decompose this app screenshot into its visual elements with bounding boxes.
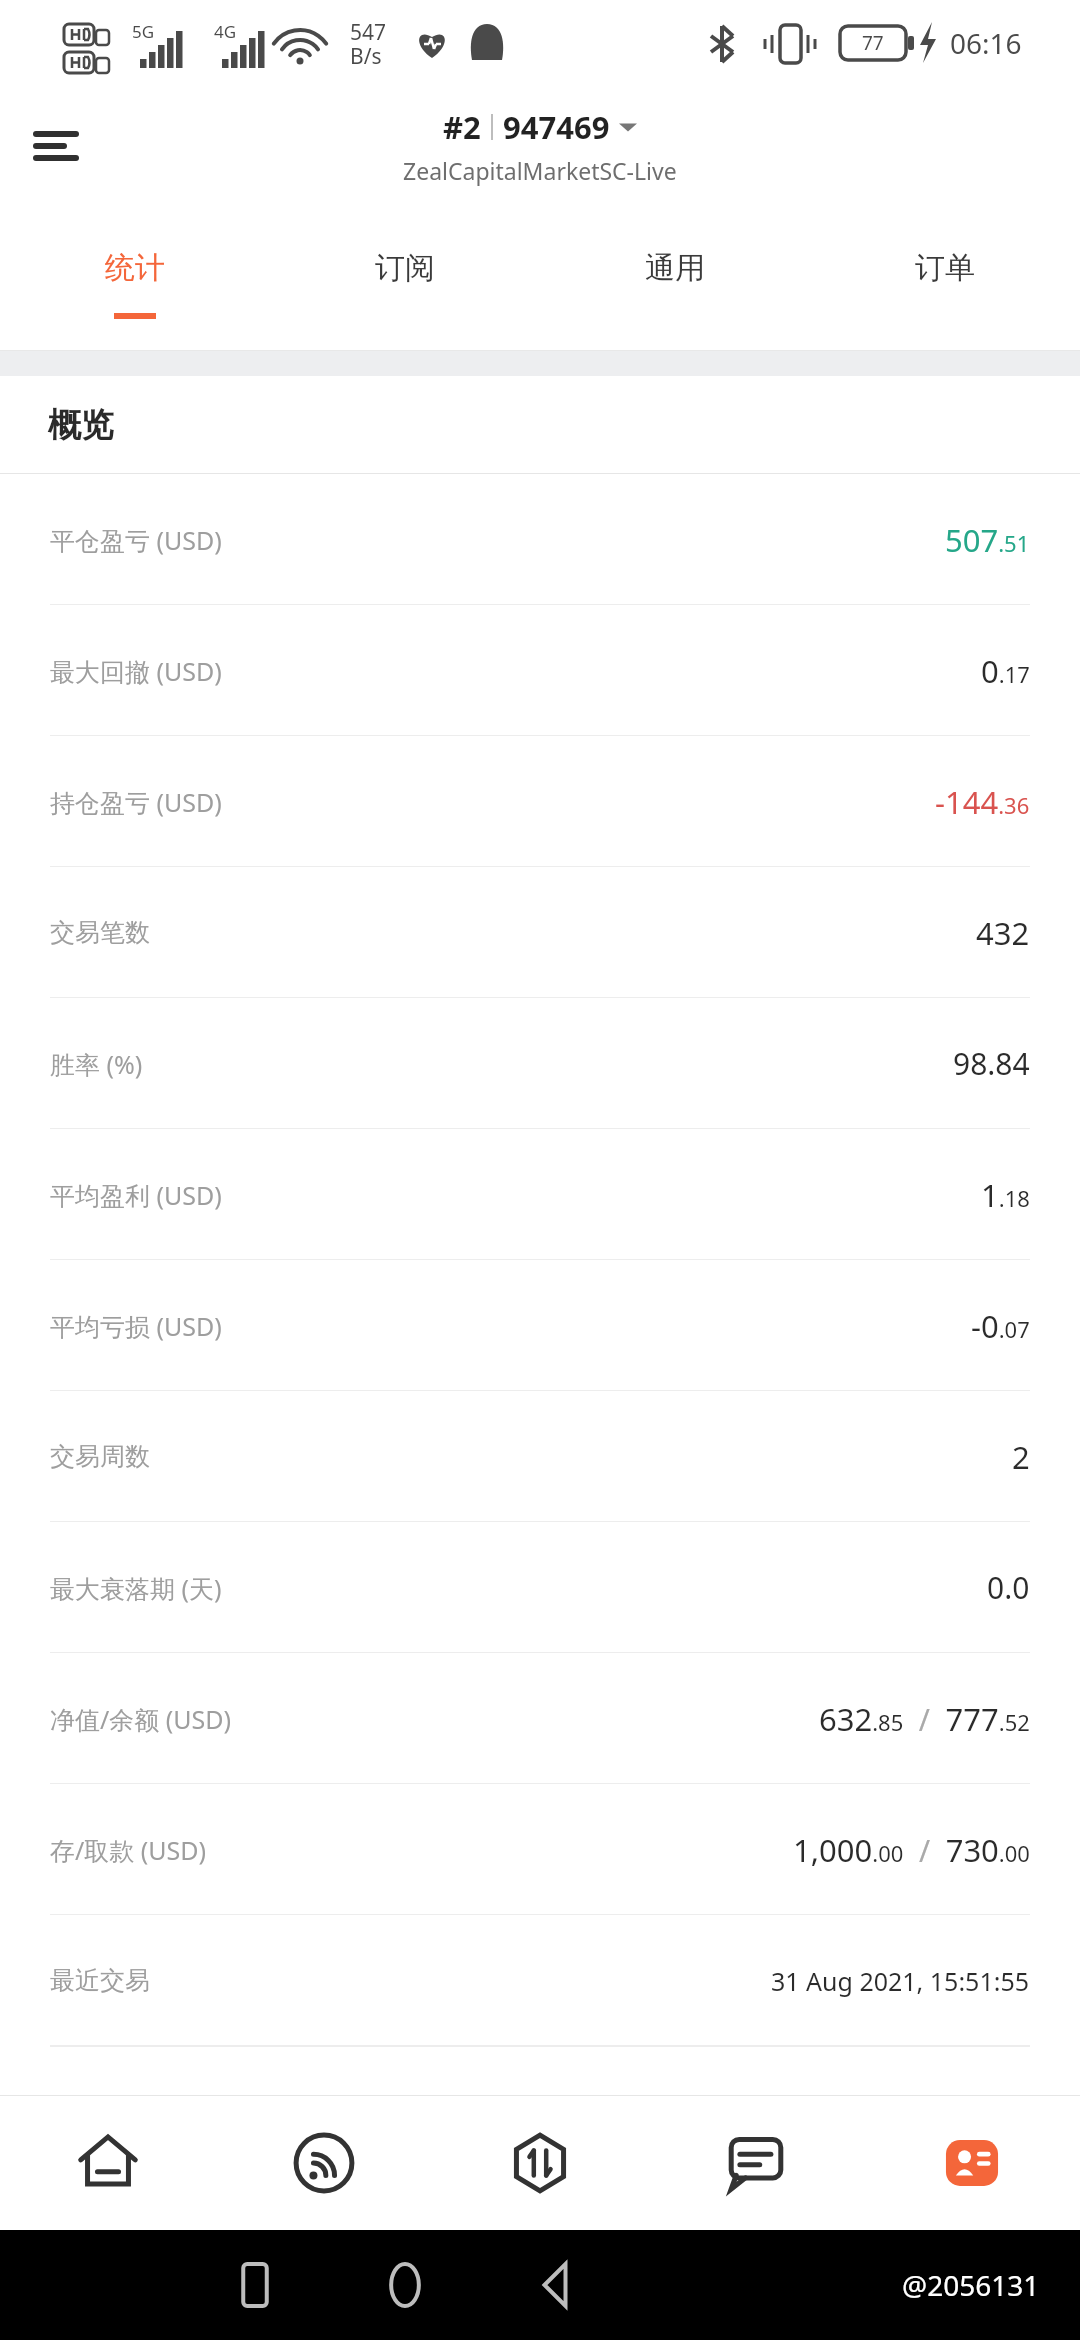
- staticText: 1,000.00 / 730.00: [793, 1829, 1030, 1871]
- button[interactable]: #2: [403, 106, 677, 186]
- button[interactable]: Accounts: [864, 2096, 1080, 2230]
- staticText: 547: [350, 18, 387, 47]
- button[interactable]: 统计: [0, 216, 270, 351]
- button[interactable]: Trade: [432, 2096, 648, 2230]
- staticText: 平均盈利 (USD): [50, 1178, 222, 1212]
- staticText: 947469: [503, 106, 610, 148]
- button[interactable]: Back: [480, 2230, 630, 2340]
- staticText: 净值/余额 (USD): [50, 1702, 232, 1736]
- staticText: 持仓盈亏 (USD): [50, 785, 222, 819]
- staticText: 98.84: [953, 1043, 1030, 1084]
- staticText: 统计: [105, 249, 165, 287]
- staticText: 77: [862, 30, 884, 56]
- button[interactable]: 交易笔数: [0, 867, 1080, 998]
- staticText: 最大回撤 (USD): [50, 654, 222, 688]
- staticText: #2: [443, 106, 481, 148]
- button[interactable]: 订阅: [270, 216, 540, 351]
- staticText: 存/取款 (USD): [50, 1833, 207, 1867]
- staticText: 交易周数: [50, 1441, 150, 1472]
- button[interactable]: Home: [330, 2230, 480, 2340]
- staticText: 交易笔数: [50, 917, 150, 948]
- button[interactable]: Signals: [216, 2096, 432, 2230]
- button[interactable]: Home: [0, 2096, 216, 2230]
- button[interactable]: 通用: [540, 216, 810, 351]
- button[interactable]: 最大衰落期 (天): [0, 1522, 1080, 1653]
- staticText: B/s: [350, 42, 382, 71]
- staticText: 507.51: [945, 519, 1030, 561]
- staticText: ZealCapitalMarketSC-Live: [403, 155, 677, 186]
- staticText: 最近交易: [50, 1965, 150, 1996]
- staticText: 2: [1012, 1436, 1030, 1478]
- button[interactable]: 存/取款 (USD): [0, 1784, 1080, 1915]
- staticText: 胜率 (%): [50, 1047, 143, 1081]
- button[interactable]: 平仓盈亏 (USD): [0, 474, 1080, 605]
- button[interactable]: 最大回撤 (USD): [0, 605, 1080, 736]
- button[interactable]: 平均亏损 (USD): [0, 1260, 1080, 1391]
- staticText: 5G: [132, 20, 155, 43]
- button[interactable]: 平均盈利 (USD): [0, 1129, 1080, 1260]
- button[interactable]: 持仓盈亏 (USD): [0, 736, 1080, 867]
- staticText: 最大衰落期 (天): [50, 1571, 222, 1605]
- staticText: @2056131: [902, 2266, 1040, 2304]
- staticText: 平均亏损 (USD): [50, 1309, 222, 1343]
- button[interactable]: Chats: [648, 2096, 864, 2230]
- button[interactable]: 净值/余额 (USD): [0, 1653, 1080, 1784]
- staticText: -144.36: [935, 781, 1030, 823]
- button[interactable]: 交易周数: [0, 1391, 1080, 1522]
- staticText: 632.85 / 777.52: [819, 1698, 1030, 1740]
- button[interactable]: Menu: [20, 110, 92, 182]
- button[interactable]: 胜率 (%): [0, 998, 1080, 1129]
- staticText: 0.0: [987, 1567, 1030, 1608]
- staticText: 订单: [915, 249, 975, 287]
- staticText: 订阅: [375, 249, 435, 287]
- button[interactable]: Recents: [180, 2230, 330, 2340]
- staticText: 通用: [645, 249, 705, 287]
- button[interactable]: 最近交易: [0, 1915, 1080, 2046]
- staticText: 1.18: [981, 1174, 1030, 1216]
- staticText: -0.07: [971, 1305, 1030, 1347]
- staticText: 概览: [48, 404, 114, 446]
- staticText: 06:16: [950, 24, 1022, 62]
- staticText: 平仓盈亏 (USD): [50, 523, 222, 557]
- staticText: 31 Aug 2021, 15:51:55: [771, 1964, 1030, 1998]
- staticText: 0.17: [981, 650, 1030, 692]
- button[interactable]: 订单: [810, 216, 1080, 351]
- staticText: 432: [976, 912, 1030, 954]
- staticText: 4G: [214, 20, 237, 43]
